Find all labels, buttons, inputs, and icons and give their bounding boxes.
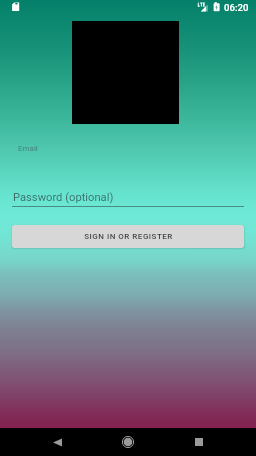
button[interactable]: Home [111, 428, 145, 456]
button[interactable]: Recent apps [182, 428, 216, 456]
button[interactable]: SIGN IN OR REGISTER [12, 225, 244, 248]
staticText: Password (optional) [13, 191, 114, 204]
staticText: 06:20 [224, 2, 249, 13]
staticText: SIGN IN OR REGISTER [84, 232, 173, 241]
staticText: Email [18, 144, 38, 153]
button[interactable]: Back [40, 428, 74, 456]
